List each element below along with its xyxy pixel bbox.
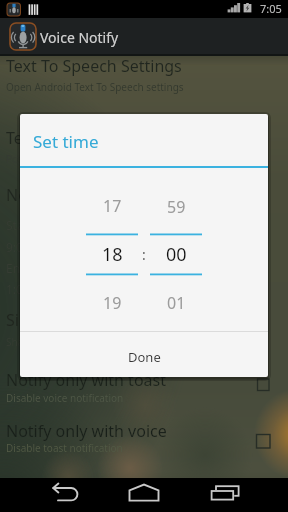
staticText: 17 xyxy=(103,195,122,217)
staticText: 19 xyxy=(103,292,122,314)
staticText: 59 xyxy=(167,196,186,218)
staticText: Disable voice notification xyxy=(6,391,124,405)
staticText: 7:05 xyxy=(260,1,282,16)
staticText: Shake to silence device xyxy=(6,335,114,349)
button[interactable] xyxy=(0,418,288,464)
staticText: Open Android Text To Speech settings xyxy=(6,80,184,94)
staticText: Voice Notify xyxy=(40,28,119,47)
staticText: Text To Speech Message xyxy=(6,127,188,149)
staticText: Notify only with voice xyxy=(6,420,167,442)
staticText: 01 xyxy=(167,292,186,314)
button[interactable] xyxy=(200,478,248,512)
staticText: Silence during calls xyxy=(6,309,150,331)
staticText: 00 xyxy=(166,242,187,267)
button[interactable] xyxy=(0,368,288,412)
staticText: Done xyxy=(128,348,161,366)
staticText: Post this message on notify xyxy=(6,152,136,166)
staticText: Notify between hours xyxy=(6,184,169,206)
staticText: End time xyxy=(6,260,57,276)
staticText: Start time xyxy=(6,217,62,233)
staticText: 9:00 PM xyxy=(6,239,52,255)
staticText: 18 xyxy=(102,242,123,267)
staticText: Set time xyxy=(33,130,99,153)
staticText: Text To Speech Settings xyxy=(6,55,182,77)
button[interactable] xyxy=(40,478,88,512)
staticText: Notify only with toast xyxy=(6,369,166,391)
staticText: : xyxy=(142,245,146,264)
button[interactable]: Done xyxy=(20,336,268,377)
button[interactable] xyxy=(0,56,288,104)
button[interactable] xyxy=(120,478,168,512)
staticText: 1:00 AM xyxy=(6,281,52,297)
staticText: Disable toast notification xyxy=(6,441,123,455)
